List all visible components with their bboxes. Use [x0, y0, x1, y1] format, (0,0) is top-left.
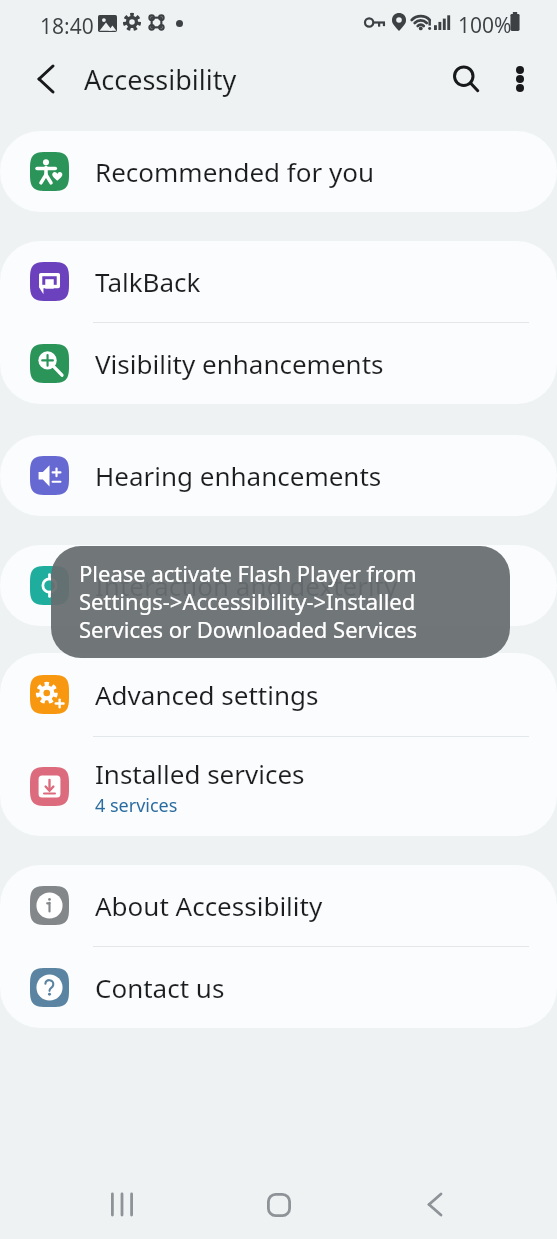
staticText: 18:40 — [40, 12, 94, 41]
button[interactable]: Recents — [72, 1144, 172, 1239]
button[interactable]: Back — [385, 1144, 485, 1239]
button[interactable]: More options — [493, 52, 547, 106]
button[interactable]: Visibility enhancements — [0, 323, 557, 404]
button[interactable]: About Accessibility — [0, 865, 557, 946]
button[interactable]: Hearing enhancements — [0, 435, 557, 516]
staticText: Accessibility — [84, 61, 237, 98]
staticText: Please activate Flash Player from Settin… — [79, 558, 490, 644]
button[interactable]: Navigate up — [22, 55, 70, 103]
staticText: 4 services — [95, 793, 178, 818]
staticText: 100% — [458, 11, 512, 40]
button[interactable]: Recommended for you — [0, 131, 557, 212]
staticText: Visibility enhancements — [95, 346, 384, 381]
staticText: TalkBack — [95, 264, 201, 299]
button[interactable]: Search — [439, 52, 493, 106]
staticText: Installed services — [95, 756, 305, 791]
button[interactable]: Home — [229, 1144, 329, 1239]
button[interactable]: Interaction and dexterity — [0, 545, 557, 626]
staticText: Hearing enhancements — [95, 458, 382, 493]
button[interactable]: Contact us — [0, 947, 557, 1028]
staticText: About Accessibility — [95, 888, 323, 923]
staticText: Interaction and dexterity — [95, 568, 398, 603]
staticText: Recommended for you — [95, 154, 375, 189]
button[interactable]: Installed services — [0, 737, 557, 836]
button[interactable]: Advanced settings — [0, 653, 557, 736]
staticText: Contact us — [95, 970, 225, 1005]
button[interactable]: TalkBack — [0, 241, 557, 322]
staticText: Advanced settings — [95, 677, 319, 712]
